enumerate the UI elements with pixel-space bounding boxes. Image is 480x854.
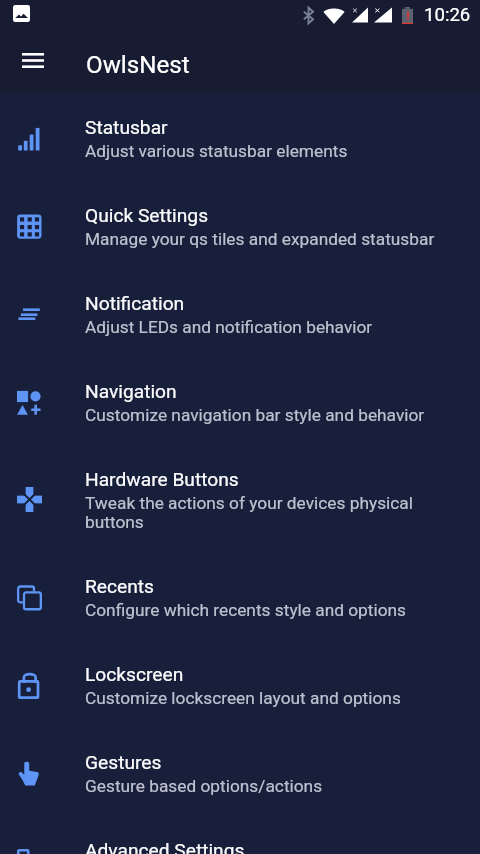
staticText: Notification <box>85 292 185 315</box>
staticText: Customize lockscreen layout and options <box>85 688 401 708</box>
staticText: Statusbar <box>85 116 168 139</box>
staticText: Advanced Settings <box>85 839 245 854</box>
staticText: Lockscreen <box>85 663 184 686</box>
staticText: Hardware Buttons <box>85 468 239 491</box>
staticText: Gesture based options/actions <box>85 776 323 796</box>
button[interactable]: Advanced Settings <box>0 817 480 854</box>
button[interactable]: Notification <box>0 270 480 358</box>
staticText: Tweak the actions of your devices physic… <box>85 493 464 532</box>
button[interactable]: Open navigation menu <box>10 37 56 83</box>
staticText: Adjust LEDs and notification behavior <box>85 317 373 337</box>
staticText: Configure which recents style and option… <box>85 600 407 620</box>
button[interactable]: Gestures <box>0 729 480 817</box>
staticText: Navigation <box>85 380 177 403</box>
button[interactable]: Navigation <box>0 358 480 446</box>
staticText: Adjust various statusbar elements <box>85 141 348 161</box>
staticText: Manage your qs tiles and expanded status… <box>85 229 435 249</box>
staticText: Customize navigation bar style and behav… <box>85 405 425 425</box>
staticText: Quick Settings <box>85 204 209 227</box>
button[interactable]: Quick Settings <box>0 182 480 270</box>
staticText: Gestures <box>85 751 162 774</box>
button[interactable]: Lockscreen <box>0 641 480 729</box>
button[interactable]: Hardware Buttons <box>0 446 480 553</box>
button[interactable]: Statusbar <box>0 94 480 182</box>
staticText: OwlsNest <box>86 51 190 79</box>
staticText: Recents <box>85 575 154 598</box>
button[interactable]: Recents <box>0 553 480 641</box>
staticText: 10:26 <box>424 4 471 25</box>
